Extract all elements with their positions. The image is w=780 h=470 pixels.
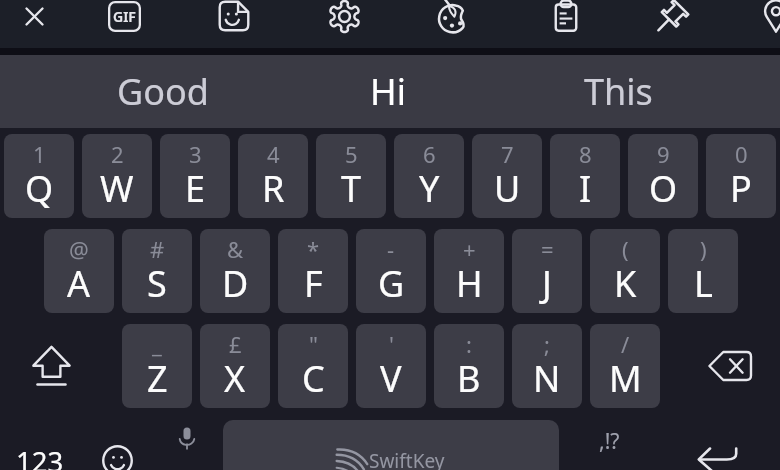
button[interactable]: + (434, 229, 504, 313)
button[interactable]: ,!? (569, 413, 649, 469)
staticText: Y (419, 164, 440, 213)
staticText: 7 (501, 139, 514, 169)
staticText: This (584, 67, 653, 116)
staticText: @ (69, 234, 89, 264)
staticText: ) (700, 234, 707, 264)
staticText: 4 (267, 139, 280, 169)
button[interactable]: : (434, 324, 504, 408)
staticText: C (302, 354, 325, 403)
staticText: Z (147, 354, 168, 403)
staticText: E (185, 164, 206, 213)
staticText: J (542, 259, 552, 308)
staticText: F (304, 259, 323, 308)
staticText: ; (544, 329, 550, 359)
button[interactable]: Stickers (210, 0, 258, 40)
button[interactable]: _ (122, 324, 192, 408)
staticText: Q (25, 164, 54, 213)
staticText: L (694, 259, 713, 308)
button[interactable]: Good (0, 55, 260, 128)
button[interactable]: 4 (238, 134, 308, 218)
staticText: 0 (735, 139, 748, 169)
button[interactable]: Pin (649, 0, 697, 40)
button[interactable]: Voice input (155, 406, 219, 470)
staticText: V (380, 354, 402, 403)
staticText: 8 (579, 139, 592, 169)
button[interactable]: Shift (19, 334, 83, 398)
button[interactable]: Emoji (85, 428, 149, 470)
button[interactable]: 2 (82, 134, 152, 218)
button[interactable]: 8 (550, 134, 620, 218)
button[interactable]: 9 (628, 134, 698, 218)
button[interactable]: / (590, 324, 660, 408)
button[interactable]: ' (356, 324, 426, 408)
staticText: & (227, 234, 244, 264)
button[interactable]: * (278, 229, 348, 313)
staticText: 1 (33, 139, 46, 169)
staticText: ,!? (599, 427, 620, 456)
button[interactable]: # (122, 229, 192, 313)
staticText: ' (389, 329, 394, 359)
button[interactable]: 5 (316, 134, 386, 218)
staticText: Hi (370, 67, 406, 116)
button[interactable]: Close (10, 0, 58, 40)
button[interactable]: 6 (394, 134, 464, 218)
staticText: + (463, 234, 476, 264)
button[interactable]: Space (223, 420, 559, 470)
button[interactable]: Backspace (698, 334, 762, 398)
staticText: ( (622, 234, 629, 264)
button[interactable]: ) (668, 229, 738, 313)
staticText: U (494, 164, 521, 213)
button[interactable]: This (520, 55, 780, 128)
button[interactable]: 1 (4, 134, 74, 218)
button[interactable]: £ (200, 324, 270, 408)
staticText: / (621, 329, 630, 359)
staticText: = (541, 234, 554, 264)
button[interactable]: @ (44, 229, 114, 313)
button[interactable]: - (356, 229, 426, 313)
button[interactable]: Themes (430, 0, 478, 40)
staticText: : (466, 329, 472, 359)
staticText: W (100, 164, 134, 213)
button[interactable]: Hi (260, 55, 520, 128)
staticText: M (609, 354, 642, 403)
button[interactable]: ( (590, 229, 660, 313)
button[interactable]: Location (752, 0, 780, 40)
button[interactable]: ; (512, 324, 582, 408)
staticText: GIF (113, 7, 136, 26)
staticText: T (341, 164, 362, 213)
button[interactable]: 123 (0, 433, 80, 470)
staticText: K (614, 259, 637, 308)
staticText: X (224, 354, 246, 403)
button[interactable]: 7 (472, 134, 542, 218)
staticText: I (579, 164, 592, 213)
button[interactable]: GIF (100, 0, 148, 40)
staticText: 5 (345, 139, 358, 169)
button[interactable]: 3 (160, 134, 230, 218)
button[interactable]: 0 (706, 134, 776, 218)
staticText: Good (117, 67, 209, 116)
staticText: 6 (423, 139, 436, 169)
staticText: D (222, 259, 249, 308)
staticText: B (457, 354, 481, 403)
staticText: O (649, 164, 678, 213)
button[interactable]: & (200, 229, 270, 313)
staticText: 9 (657, 139, 670, 169)
button[interactable]: " (278, 324, 348, 408)
staticText: " (309, 329, 318, 359)
staticText: R (262, 164, 285, 213)
staticText: S (147, 259, 167, 308)
staticText: £ (229, 329, 242, 359)
staticText: H (456, 259, 483, 308)
staticText: A (67, 259, 91, 308)
staticText: _ (152, 329, 162, 359)
staticText: 123 (16, 443, 64, 470)
button[interactable]: Clipboard (542, 0, 590, 40)
button[interactable]: = (512, 229, 582, 313)
staticText: - (387, 234, 395, 264)
staticText: 3 (189, 139, 202, 169)
staticText: SwiftKey (369, 448, 445, 470)
staticText: 2 (111, 139, 124, 169)
staticText: P (730, 164, 752, 213)
button[interactable]: Enter (686, 429, 750, 470)
button[interactable]: Settings (320, 0, 368, 40)
